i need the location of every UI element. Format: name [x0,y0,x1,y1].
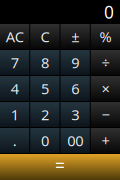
staticText: = [55,153,65,176]
staticText: 1 [11,105,19,124]
staticText: C [40,27,49,46]
button[interactable]: ÷ [91,50,120,75]
staticText: − [101,105,109,124]
button[interactable]: 5 [30,76,59,101]
button[interactable]: 1 [0,102,29,127]
button[interactable]: 4 [0,76,29,101]
staticText: 7 [11,53,19,72]
button[interactable]: 2 [30,102,59,127]
button[interactable]: 0 [30,128,59,153]
button[interactable]: × [91,76,120,101]
button[interactable]: = [0,154,120,180]
staticText: 00 [67,131,83,150]
button[interactable]: + [91,128,120,153]
staticText: 9 [71,53,79,72]
button[interactable]: ± [60,24,90,49]
staticText: 3 [71,105,79,124]
staticText: . [13,131,17,150]
staticText: ÷ [101,53,109,72]
button[interactable]: 3 [60,102,90,127]
button[interactable]: 7 [0,50,29,75]
button[interactable]: % [91,24,120,49]
staticText: 6 [71,79,79,98]
staticText: + [101,131,109,150]
staticText: 8 [41,53,49,72]
button[interactable]: AC [0,24,29,49]
staticText: 4 [11,79,19,98]
button[interactable]: 9 [60,50,90,75]
staticText: 2 [41,105,49,124]
staticText: × [101,79,109,98]
staticText: 0 [104,0,114,23]
button[interactable]: 8 [30,50,59,75]
staticText: AC [6,27,24,46]
staticText: ± [71,27,79,46]
staticText: 5 [41,79,49,98]
button[interactable]: C [30,24,59,49]
button[interactable]: . [0,128,29,153]
button[interactable]: − [91,102,120,127]
button[interactable]: 00 [60,128,90,153]
staticText: % [99,27,111,46]
staticText: 0 [41,131,49,150]
button[interactable]: 6 [60,76,90,101]
